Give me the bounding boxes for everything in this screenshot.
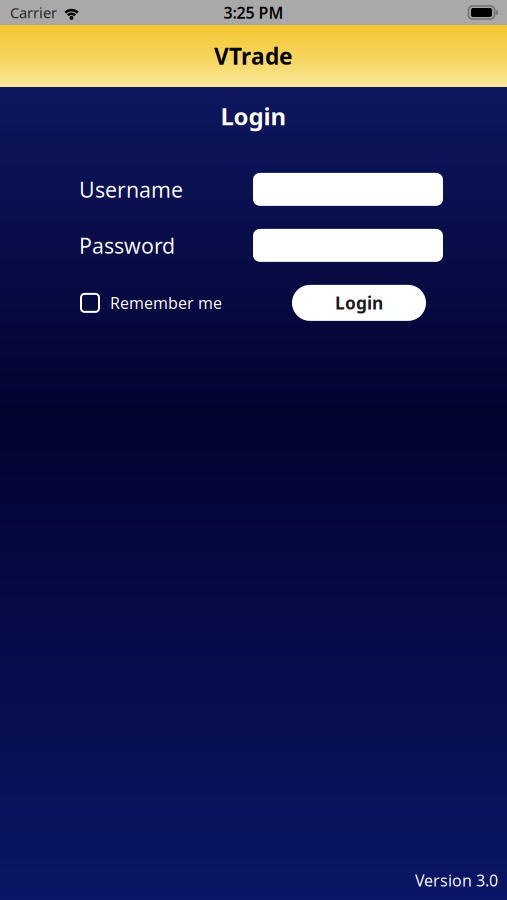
button[interactable]: Remember me [81,292,222,313]
staticText: 3:25 PM [223,2,283,23]
staticText: Login [335,291,383,314]
staticText: Password [79,231,175,259]
staticText: Remember me [110,292,222,313]
button[interactable] [253,173,443,206]
staticText: Login [220,100,286,132]
button[interactable] [253,229,443,262]
staticText: Username [79,175,183,203]
staticText: Version 3.0 [415,870,498,891]
button[interactable]: Login [292,285,426,321]
staticText: VTrade [214,41,293,71]
staticText: Carrier [10,3,57,22]
